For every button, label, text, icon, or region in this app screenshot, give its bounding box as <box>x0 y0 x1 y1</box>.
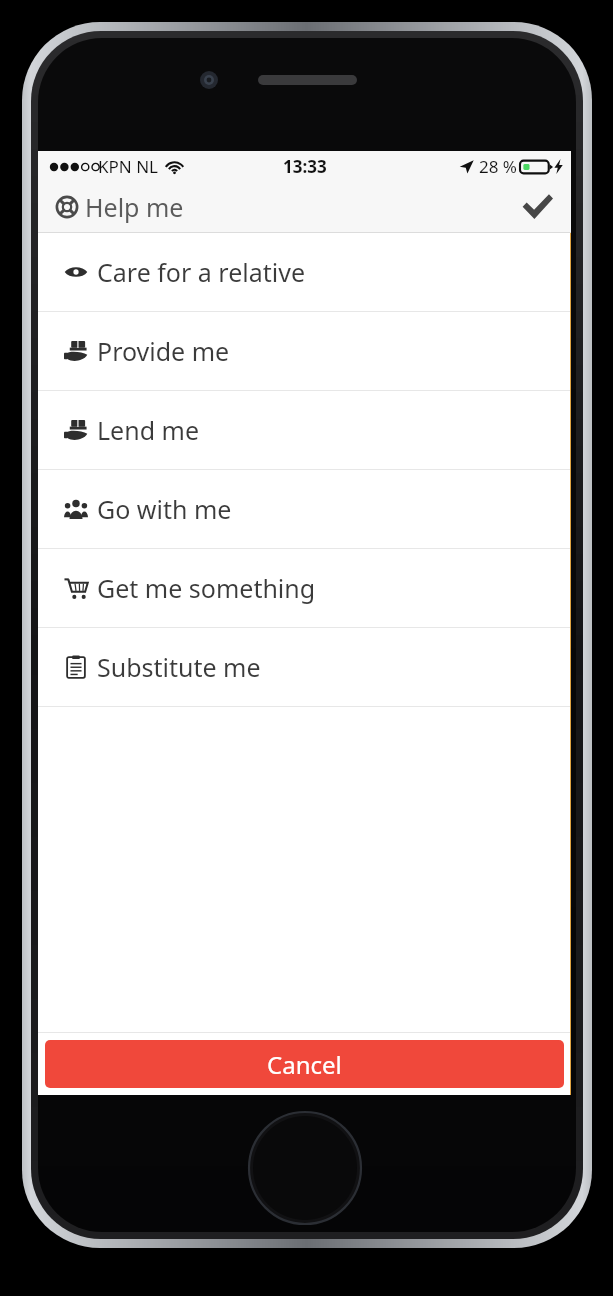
staticText: Get me something <box>97 571 316 605</box>
button[interactable]: Care for a relative <box>38 233 571 311</box>
button[interactable]: Provide me <box>38 312 571 390</box>
button[interactable]: Get me something <box>38 549 571 627</box>
button[interactable]: Lend me <box>38 391 571 469</box>
button[interactable]: Help me <box>56 190 184 224</box>
staticText: Lend me <box>97 413 200 447</box>
button[interactable]: Cancel <box>45 1040 564 1088</box>
staticText: Cancel <box>267 1048 342 1081</box>
staticText: 13:33 <box>283 155 327 178</box>
staticText: Provide me <box>97 334 230 368</box>
staticText: 28 % <box>479 155 517 178</box>
button[interactable]: Go with me <box>38 470 571 548</box>
staticText: Substitute me <box>97 650 261 684</box>
button[interactable]: Substitute me <box>38 628 571 706</box>
staticText: Care for a relative <box>97 255 306 289</box>
button[interactable]: Confirm <box>513 183 561 231</box>
staticText: Go with me <box>97 492 232 526</box>
staticText: KPN NL <box>98 155 158 178</box>
staticText: Help me <box>85 190 184 224</box>
